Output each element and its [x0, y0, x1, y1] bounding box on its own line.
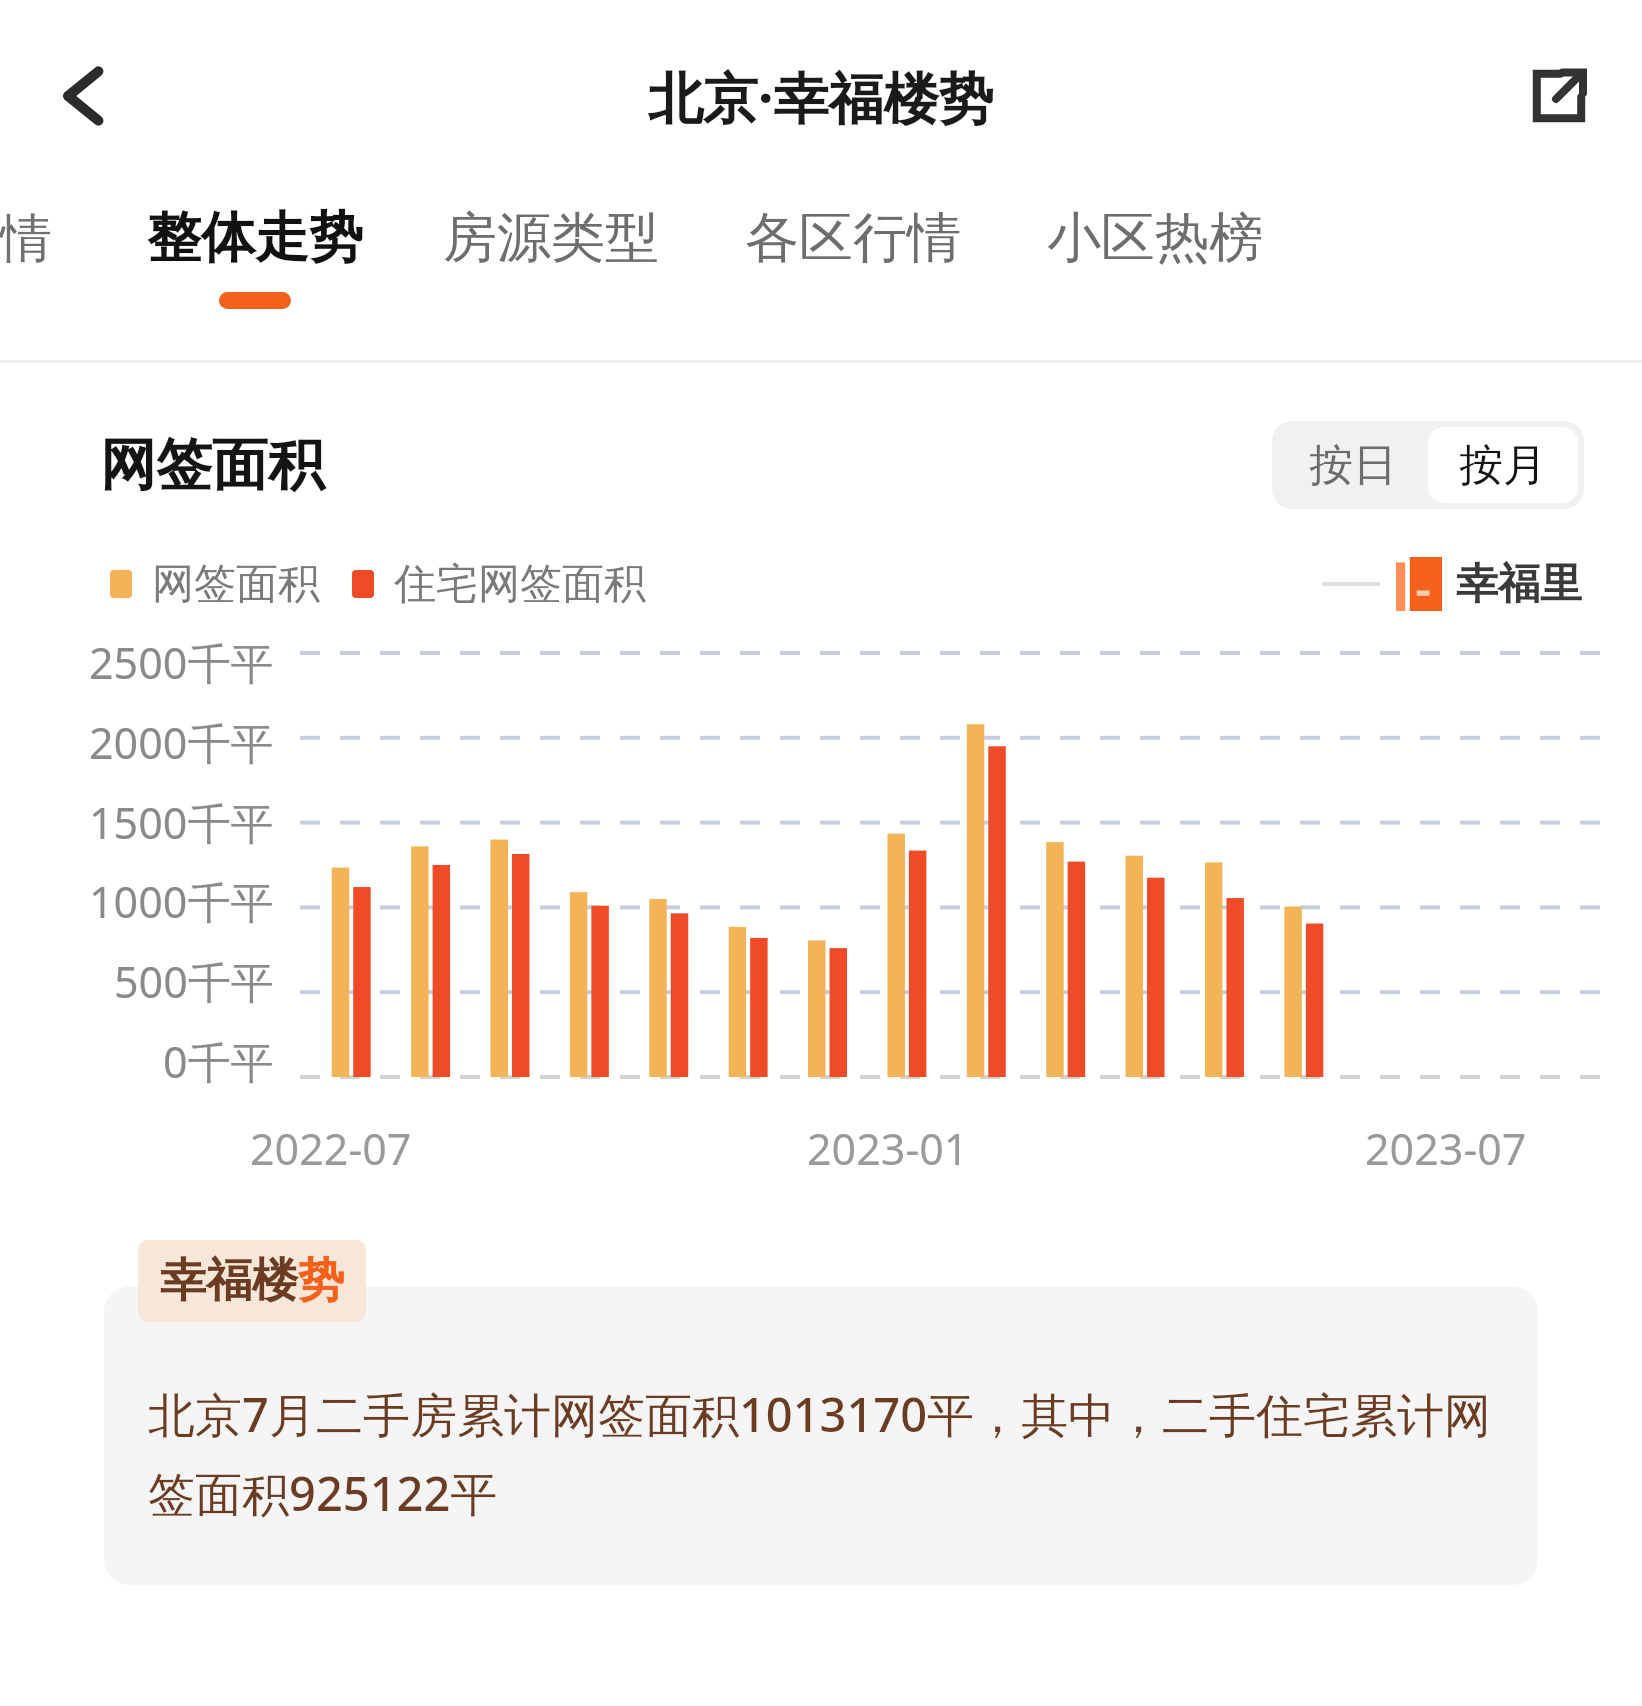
button[interactable]: 按月 — [1428, 427, 1578, 503]
staticText: 整体走势 — [147, 204, 363, 272]
button[interactable]: 各区行情 — [702, 192, 1004, 360]
button[interactable]: 小区热榜 — [1004, 192, 1306, 360]
staticText: 网签面积 — [152, 558, 320, 611]
staticText: 网签面积 — [100, 430, 324, 501]
staticText: 势 — [298, 1252, 344, 1310]
staticText: 小区热榜 — [1047, 204, 1263, 272]
staticText: 1000千平 — [89, 872, 274, 931]
staticText: 2022-07 — [250, 1119, 412, 1178]
staticText: 住宅网签面积 — [394, 558, 646, 611]
staticText: 北京·幸福楼势 — [648, 59, 994, 134]
staticText: 按月 — [1459, 438, 1547, 493]
staticText: 幸福楼 — [160, 1252, 298, 1310]
staticText: 房源类型 — [443, 204, 659, 272]
staticText: 2500千平 — [89, 633, 274, 692]
button[interactable]: 整体走势 — [110, 192, 400, 360]
button[interactable]: 房源类型 — [400, 192, 702, 360]
staticText: 幸福里 — [1456, 558, 1582, 611]
button[interactable]: 北京7月二手房累计网签面积1013170平，其中，二手住宅累计网签面积92512… — [104, 1286, 1538, 1585]
staticText: 2023-01 — [807, 1119, 969, 1178]
button[interactable]: Share — [1504, 41, 1614, 151]
staticText: 各区行情 — [745, 204, 961, 272]
staticText: 北京7月二手房累计网签面积1013170平，其中，二手住宅累计网签面积92512… — [148, 1382, 1494, 1525]
staticText: 1500千平 — [89, 793, 274, 852]
staticText: 500千平 — [114, 952, 274, 1011]
staticText: 按日 — [1309, 438, 1397, 493]
staticText: 2000千平 — [89, 713, 274, 772]
staticText: 情 — [0, 206, 40, 272]
button[interactable]: 情 — [0, 192, 40, 360]
staticText: 0千平 — [163, 1032, 274, 1091]
button[interactable]: 按日 — [1278, 427, 1428, 503]
staticText: 2023-07 — [1365, 1119, 1527, 1178]
button[interactable]: Back — [30, 41, 140, 151]
